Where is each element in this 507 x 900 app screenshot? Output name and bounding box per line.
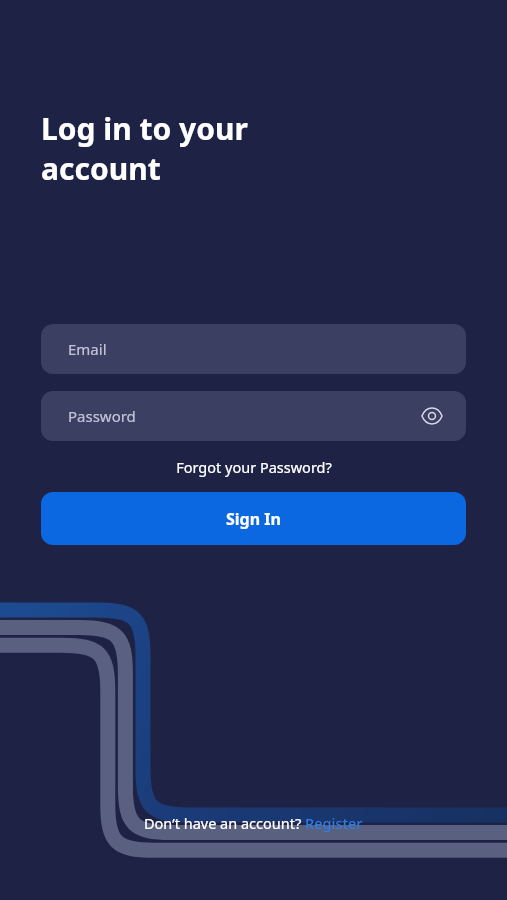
button[interactable]: Password: [41, 391, 466, 441]
staticText: Don’t have an account? Register: [144, 813, 363, 833]
staticText: Password: [68, 406, 136, 426]
button[interactable]: Show password: [414, 398, 450, 434]
staticText: Email: [68, 339, 107, 359]
button[interactable]: Forgot your Password?: [168, 454, 340, 480]
staticText: Log in to your account: [41, 108, 248, 189]
button[interactable]: Email: [41, 324, 466, 374]
button[interactable]: Sign In: [41, 492, 466, 545]
button[interactable]: Don’t have an account? Register: [140, 811, 367, 835]
staticText: Forgot your Password?: [176, 457, 332, 477]
staticText: Sign In: [226, 508, 281, 530]
